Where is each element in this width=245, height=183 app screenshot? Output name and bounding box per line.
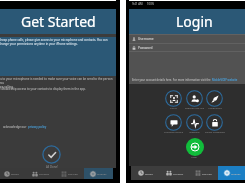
staticText: Settings bbox=[231, 172, 241, 175]
staticText: Forgot Credentials bbox=[205, 131, 225, 134]
button[interactable]: Call ID bbox=[161, 90, 186, 110]
staticText: Password bbox=[138, 46, 153, 50]
button[interactable]: Username bbox=[129, 35, 245, 43]
staticText: Get Started bbox=[21, 12, 96, 31]
button[interactable]: Contacts bbox=[160, 166, 189, 180]
staticText: Login bbox=[191, 156, 198, 159]
button[interactable]: Settings bbox=[218, 166, 245, 180]
button[interactable]: Dial Pad bbox=[55, 168, 84, 179]
button[interactable]: Settings bbox=[84, 168, 113, 179]
button[interactable]: Password bbox=[129, 44, 245, 52]
staticText: Username bbox=[138, 37, 154, 41]
button[interactable]: Customer Service bbox=[161, 114, 186, 134]
staticText: Diagnose bbox=[189, 131, 200, 134]
staticText: Dial Pad bbox=[202, 172, 212, 175]
staticText: Settings bbox=[97, 172, 107, 175]
button[interactable]: Diagnose bbox=[182, 114, 207, 134]
staticText: Register New Use bbox=[185, 107, 204, 110]
button[interactable]: Forgot Credentials bbox=[202, 114, 227, 134]
staticText: Customer Service bbox=[164, 131, 183, 134]
button[interactable]: Recent bbox=[0, 168, 26, 179]
staticText: Notifications bbox=[208, 107, 222, 110]
staticText: MobileVOIP website bbox=[212, 78, 238, 82]
staticText: cheap phone calls, please give access to… bbox=[0, 38, 115, 46]
staticText: Dial Pad bbox=[68, 172, 78, 175]
staticText: 9:41 AM 100% bbox=[132, 2, 155, 6]
staticText: Login bbox=[176, 12, 213, 31]
staticText: Recent bbox=[145, 172, 154, 175]
button[interactable]: Register New Use bbox=[182, 90, 207, 110]
staticText: acknowledge our bbox=[3, 125, 28, 129]
button[interactable]: Recent bbox=[131, 166, 160, 180]
staticText: All Done! bbox=[46, 165, 58, 169]
button[interactable]: Dial Pad bbox=[189, 166, 218, 180]
button[interactable]: Login bbox=[186, 138, 204, 156]
staticText: e MobileVoip access to your contacts to … bbox=[0, 87, 115, 91]
staticText: Contacts bbox=[173, 172, 184, 175]
staticText: Call ID bbox=[170, 107, 177, 110]
staticText: Recent bbox=[11, 172, 20, 175]
button[interactable]: Contacts bbox=[26, 168, 55, 179]
button[interactable]: Notifications bbox=[202, 90, 227, 110]
button[interactable]: All Done bbox=[42, 145, 61, 164]
staticText: ss to your microphone is needed to make … bbox=[0, 77, 115, 89]
staticText: Contacts bbox=[39, 172, 50, 175]
staticText: privacy policy bbox=[28, 125, 47, 129]
staticText: Enter your account details here. For mor… bbox=[132, 78, 212, 82]
